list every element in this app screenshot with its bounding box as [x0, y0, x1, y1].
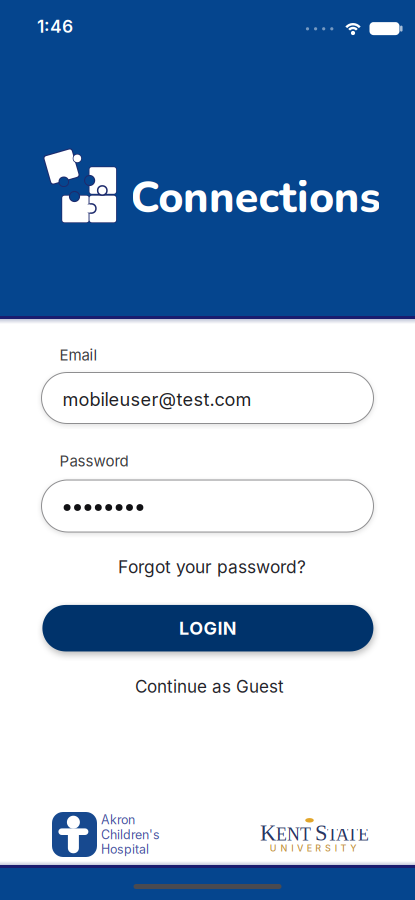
staticText: Continue as Guest [135, 676, 284, 697]
staticText: Email [59, 346, 97, 364]
staticText: S [325, 843, 331, 854]
staticText: K [260, 821, 276, 845]
staticText: R [315, 843, 321, 854]
staticText: U [270, 843, 277, 854]
staticText: LOGIN [179, 617, 237, 639]
staticText: ENT [276, 825, 311, 844]
button[interactable]: Forgot your password? [118, 556, 306, 577]
staticText: V [297, 843, 303, 854]
staticText: I [335, 843, 337, 854]
button[interactable]: LOGIN [42, 605, 373, 651]
staticText: I [291, 843, 293, 854]
staticText: Connections [130, 169, 380, 227]
staticText: TATE [327, 825, 369, 844]
staticText: Y [350, 843, 356, 854]
staticText: Hospital [101, 842, 149, 857]
staticText: Children's [101, 827, 160, 842]
button[interactable]: mobileuser@test.com [41, 372, 373, 423]
staticText: N [281, 843, 288, 854]
staticText: S [315, 821, 327, 845]
staticText: Akron [101, 812, 135, 827]
staticText: E [307, 843, 312, 854]
button[interactable]: Continue as Guest [135, 676, 284, 697]
staticText: mobileuser@test.com [62, 388, 251, 410]
button[interactable] [41, 480, 373, 532]
staticText: 1:46 [37, 16, 73, 37]
staticText: Password [59, 452, 128, 470]
staticText: T [340, 843, 346, 854]
staticText: Forgot your password? [118, 556, 306, 577]
